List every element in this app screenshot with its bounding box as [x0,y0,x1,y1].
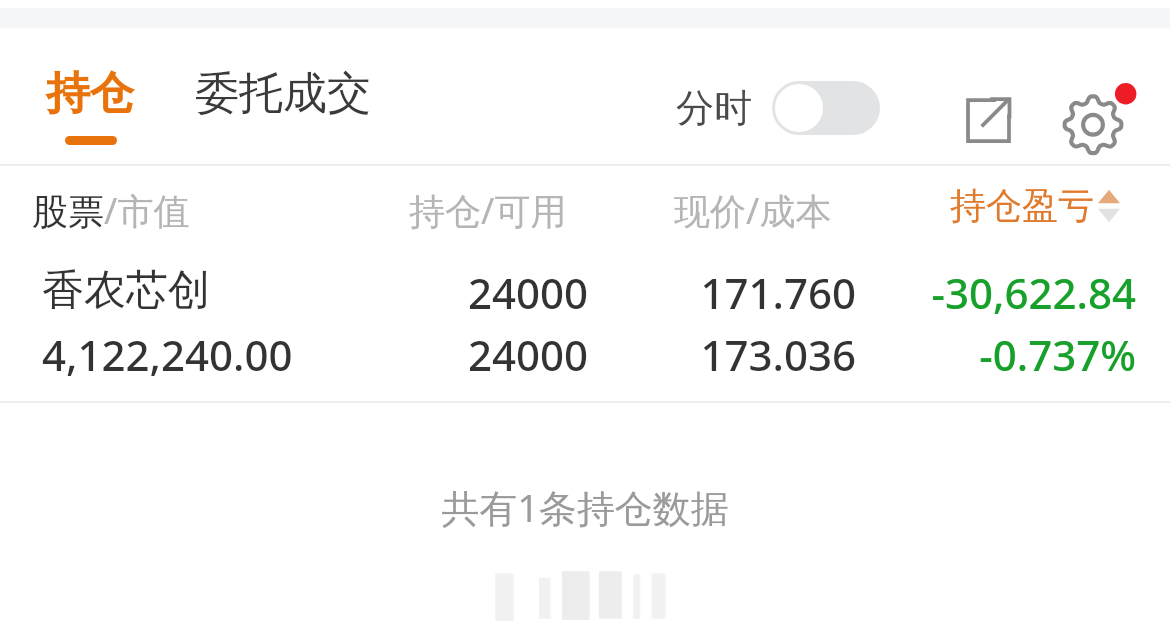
staticText: 共有1条持仓数据 [0,481,1170,533]
button[interactable]: 分时 [676,76,880,140]
staticText: 4,122,240.00 [42,326,293,383]
staticText: 分时 [676,84,752,132]
button[interactable]: 委托成交 [180,28,402,152]
button[interactable]: Share [948,80,1028,160]
staticText: -0.737% [896,326,1136,383]
staticText: 持仓/可用 [409,186,567,235]
staticText: -30,622.84 [896,264,1136,321]
staticText: 股票/市值 [32,186,190,235]
staticText: 持仓 [46,66,134,121]
staticText: 香农芯创 [42,264,210,317]
staticText: 24000 [388,326,588,383]
staticText: 持仓盈亏 [950,183,1094,228]
button[interactable]: Settings [1050,80,1136,166]
staticText: 24000 [388,264,588,321]
staticText: 171.760 [640,264,856,321]
button[interactable]: 香农芯创 [0,244,1170,401]
button[interactable]: 持仓 [30,28,152,152]
staticText: 173.036 [640,326,856,383]
button[interactable]: 持仓盈亏 [950,174,1120,236]
staticText: 委托成交 [195,66,371,121]
staticText: 现价/成本 [674,186,832,235]
